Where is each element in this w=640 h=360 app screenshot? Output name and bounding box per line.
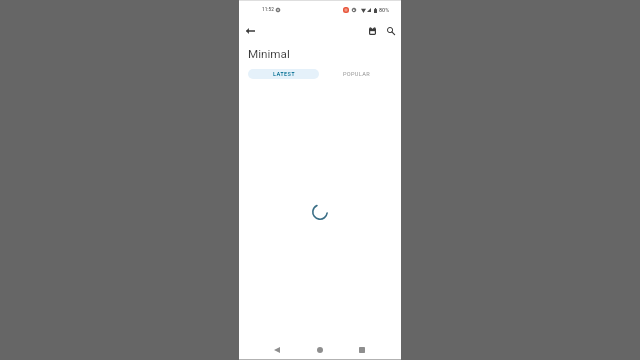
button[interactable]: Navigate up <box>238 19 262 43</box>
staticText: LATEST <box>273 71 295 78</box>
button[interactable]: Recent apps <box>352 340 372 360</box>
button[interactable]: Rewards <box>360 19 384 43</box>
button[interactable]: POPULAR <box>321 69 392 79</box>
button[interactable]: Home <box>310 340 330 360</box>
button[interactable]: LATEST <box>248 69 319 79</box>
staticText: 80% <box>379 7 390 13</box>
staticText: POPULAR <box>343 71 370 78</box>
staticText: 11:52 <box>262 7 274 13</box>
button[interactable]: Search <box>379 19 403 43</box>
staticText: Minimal <box>248 47 290 61</box>
button[interactable]: Back <box>267 340 287 360</box>
